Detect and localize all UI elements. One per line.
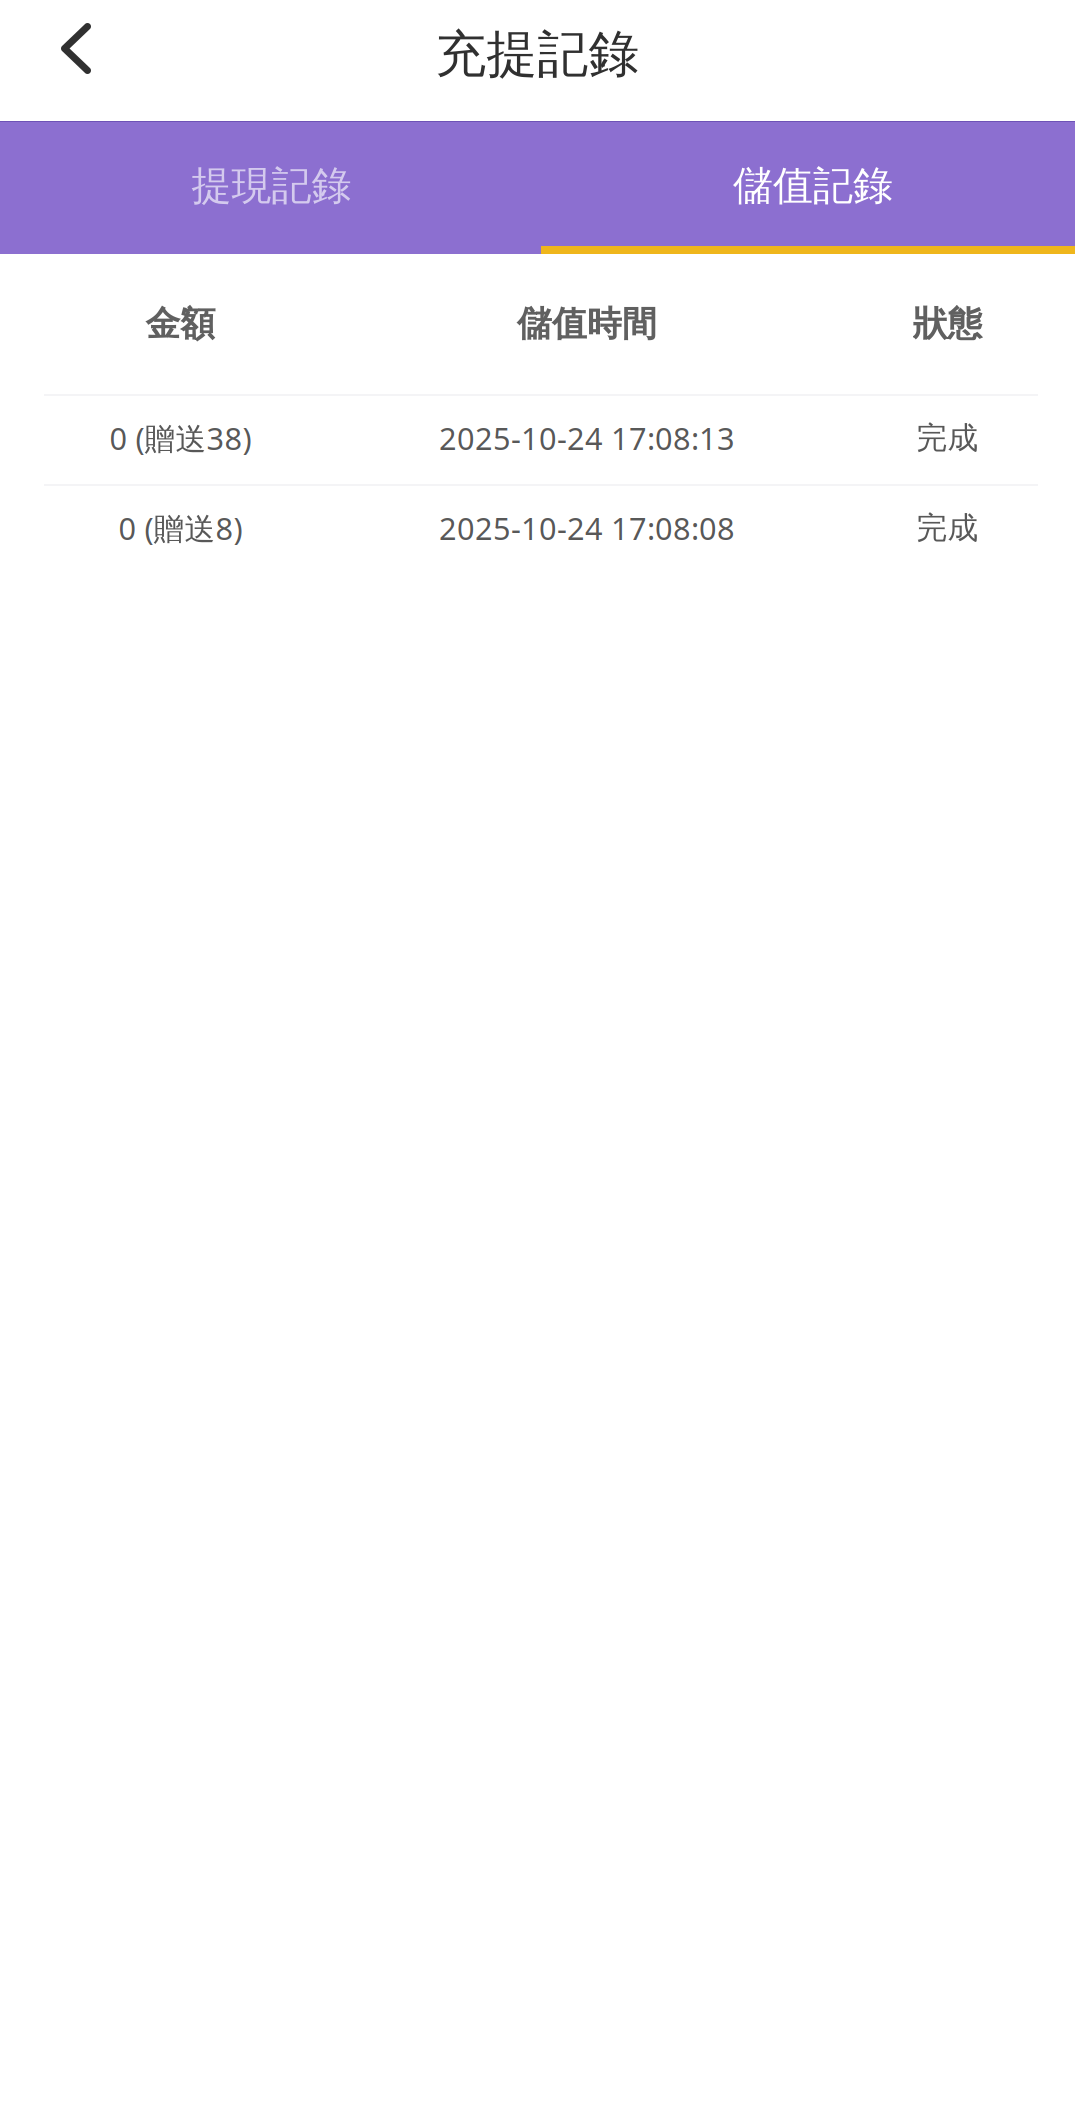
- staticText: 完成: [916, 509, 978, 547]
- staticText: 儲值記錄: [733, 161, 893, 210]
- staticText: 提現記錄: [191, 161, 351, 210]
- staticText: 狀態: [912, 303, 982, 345]
- staticText: 金額: [145, 303, 215, 345]
- staticText: 2025-10-24 17:08:13: [439, 418, 735, 458]
- button[interactable]: Back: [0, 0, 140, 121]
- staticText: 儲值時間: [517, 303, 657, 345]
- staticText: 0 (贈送8): [118, 508, 242, 548]
- staticText: 2025-10-24 17:08:08: [439, 508, 735, 548]
- staticText: 充提記錄: [435, 23, 639, 86]
- button[interactable]: 提現記錄: [0, 122, 541, 246]
- staticText: 完成: [916, 419, 978, 457]
- button[interactable]: 儲值記錄: [541, 122, 1075, 246]
- staticText: 0 (贈送38): [109, 418, 251, 458]
